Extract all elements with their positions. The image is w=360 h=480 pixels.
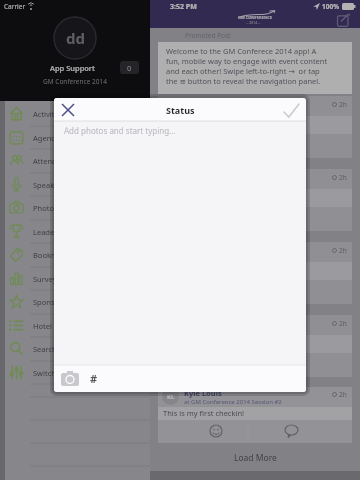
staticText: Sponsors [33, 297, 66, 307]
staticText: 2h [339, 390, 347, 399]
staticText: dd [66, 28, 85, 48]
button[interactable] [209, 424, 223, 438]
staticText: 100% [322, 2, 340, 11]
button[interactable]: Search [0, 337, 150, 361]
staticText: 2h [339, 100, 347, 109]
staticText: Agenda [33, 133, 61, 143]
staticText: # [90, 371, 98, 386]
staticText: at GM Conference 2014 Session #2 [184, 398, 282, 406]
button[interactable] [61, 371, 79, 386]
staticText: Status [166, 104, 195, 116]
button[interactable] [209, 358, 223, 372]
staticText: Switch Event [33, 368, 78, 378]
staticText: Leaderboard [33, 227, 79, 237]
staticText: Search [33, 344, 57, 354]
button[interactable]: Surveys [0, 267, 150, 291]
staticText: the ≡ button to reveal the navigation pa… [166, 76, 321, 86]
staticText: Photos [33, 203, 58, 213]
staticText: Hotel Map [33, 321, 70, 331]
staticText: Activity Stream [33, 109, 86, 119]
button[interactable]: Sponsors [0, 290, 150, 314]
staticText: fun, mobile way to engage with event con… [166, 56, 328, 66]
staticText: 3:52 PM [170, 2, 197, 12]
button[interactable] [280, 100, 302, 120]
staticText: Load More [234, 452, 277, 464]
button[interactable]: Bookmarks [0, 243, 150, 267]
staticText: 2h [339, 173, 347, 182]
staticText: KL [167, 393, 175, 401]
staticText: Add photos and start typing... [64, 125, 176, 136]
staticText: Welcome to the GM Conferece 2014 app! A [166, 46, 317, 56]
button[interactable]: # [86, 368, 102, 388]
button[interactable] [58, 100, 78, 120]
staticText: Attendees [33, 156, 69, 166]
staticText: App Support [50, 63, 95, 73]
staticText: Carrier [4, 2, 26, 11]
button[interactable]: Hotel Map [0, 314, 150, 338]
staticText: GM Conference 2014 [43, 77, 107, 86]
button[interactable]: KL [158, 387, 352, 443]
button[interactable]: Attendees [0, 149, 150, 173]
button[interactable] [337, 13, 351, 27]
staticText: Bookmarks [33, 250, 73, 260]
button[interactable] [284, 358, 299, 372]
staticText: Promoted Post [185, 31, 231, 40]
staticText: Surveys [33, 274, 61, 284]
staticText: 0 [127, 63, 132, 73]
staticText: and each other! Swipe left-to-right → or… [166, 66, 320, 76]
staticText: GM CONFERENCE [238, 15, 272, 20]
button[interactable]: Speakers [0, 173, 150, 197]
staticText: Speakers [33, 180, 66, 190]
staticText: Kyle Louis [184, 388, 222, 398]
button[interactable]: Activity Stream [0, 102, 150, 126]
button[interactable]: Load More [150, 445, 360, 471]
staticText: This is my first checkin! [163, 408, 245, 418]
button[interactable]: Photos [0, 196, 150, 220]
button[interactable]: Leaderboard [0, 220, 150, 244]
button[interactable] [284, 424, 299, 438]
staticText: at GM Conference 2014 [184, 107, 251, 115]
button[interactable]: Agenda [0, 126, 150, 150]
staticText: 2h [339, 319, 347, 328]
button[interactable]: Switch Event [0, 361, 150, 385]
button[interactable]: Welcome to the GM Conferece 2014 app! A [158, 42, 352, 94]
staticText: -- 2014 -- [246, 20, 261, 25]
staticText: 2h [339, 246, 347, 255]
